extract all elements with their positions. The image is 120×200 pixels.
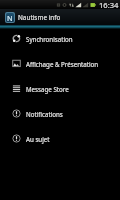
staticText: 16:34 (99, 0, 119, 9)
other: Affichage et Présentation (12, 59, 21, 68)
staticText: Message Store (26, 85, 69, 93)
staticText: Au sujet (26, 135, 50, 143)
other: Synchronisation (12, 34, 21, 43)
staticText: Affichage & Présentation (26, 60, 99, 68)
button[interactable]: Informations (0, 101, 120, 126)
staticText: Nautisme info (18, 13, 61, 22)
button[interactable]: Informations (0, 126, 120, 151)
staticText: Synchronisation (26, 35, 73, 43)
staticText: Notifications (26, 110, 63, 118)
button[interactable]: Synchronisation (0, 26, 120, 51)
button[interactable]: Affichage et Présentation (0, 51, 120, 76)
staticText: N (7, 13, 13, 22)
other: Message Store (12, 84, 21, 93)
button[interactable]: N (0, 9, 120, 25)
other: Informations (12, 109, 21, 118)
other: Informations (12, 134, 21, 143)
button[interactable]: Message Store (0, 76, 120, 101)
